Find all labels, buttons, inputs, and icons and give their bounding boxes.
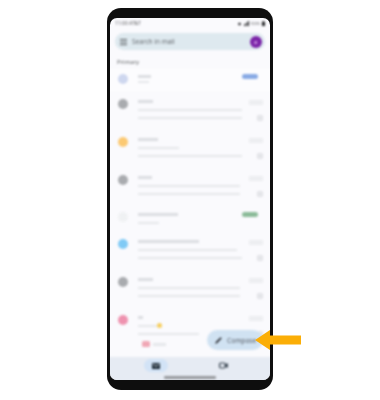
- button[interactable]: Account: [250, 36, 262, 48]
- staticText: Search in mail: [132, 37, 175, 46]
- button[interactable]: [110, 270, 270, 308]
- button[interactable]: [110, 206, 270, 232]
- staticText: Primary: [117, 58, 140, 66]
- button[interactable]: Mail: [144, 359, 168, 372]
- button[interactable]: [110, 92, 270, 130]
- button[interactable]: Meet: [211, 359, 235, 372]
- staticText: 100%: [250, 21, 261, 26]
- staticText: Compose: [227, 336, 257, 345]
- button[interactable]: [110, 130, 270, 168]
- staticText: a: [254, 38, 258, 46]
- staticText: 11:00 AT&T: [115, 20, 141, 27]
- button[interactable]: Search in mail: [115, 33, 265, 50]
- button[interactable]: [110, 232, 270, 270]
- button[interactable]: [110, 308, 270, 352]
- other: Pointer arrow: [255, 330, 301, 350]
- button[interactable]: Compose: [207, 330, 263, 350]
- button[interactable]: [110, 168, 270, 206]
- button[interactable]: [110, 68, 270, 92]
